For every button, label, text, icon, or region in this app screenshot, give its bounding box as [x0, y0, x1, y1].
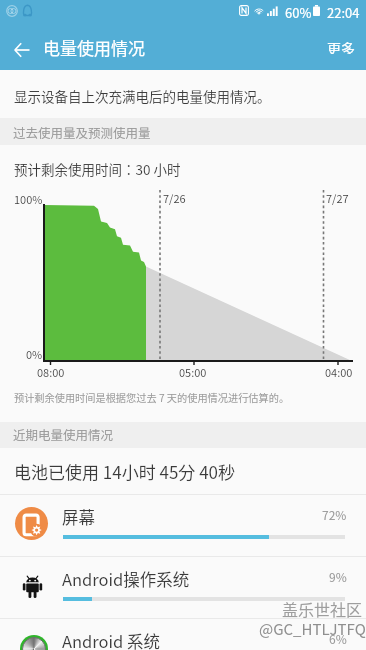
staticText: @GC_HTLJTFQ: [259, 618, 366, 640]
staticText: 电池已使用 14小时 45分 40秒: [14, 459, 236, 484]
staticText: 6%: [329, 630, 347, 647]
button[interactable]: Android操作系统: [0, 557, 366, 618]
staticText: 05:00: [179, 364, 207, 380]
staticText: 更多: [327, 38, 355, 54]
staticText: 电量使用情况: [43, 35, 145, 60]
staticText: 7/26: [163, 190, 186, 206]
staticText: 显示设备自上次充满电后的电量使用情况。: [14, 86, 271, 106]
staticText: 9%: [329, 568, 347, 585]
staticText: 7/27: [326, 190, 349, 206]
staticText: 盖乐世社区: [282, 597, 363, 620]
staticText: 22:04: [327, 3, 360, 22]
button[interactable]: Android 系统: [0, 619, 366, 650]
staticText: 60%: [285, 3, 312, 22]
button[interactable]: 返回: [5, 33, 39, 67]
staticText: 预计剩余使用时间是根据您过去 7 天的使用情况进行估算的。: [14, 390, 290, 405]
staticText: Android操作系统: [62, 567, 190, 591]
staticText: 04:00: [325, 364, 353, 380]
button[interactable]: 更多: [309, 24, 366, 68]
staticText: 100%: [14, 191, 43, 207]
staticText: 屏幕: [62, 505, 95, 529]
button[interactable]: 屏幕: [0, 495, 366, 556]
staticText: 0%: [26, 346, 43, 362]
staticText: 近期电量使用情况: [13, 425, 114, 443]
staticText: 过去使用量及预测使用量: [13, 123, 151, 141]
staticText: 72%: [322, 506, 347, 523]
staticText: 08:00: [37, 364, 65, 380]
staticText: Android 系统: [62, 629, 161, 650]
staticText: 预计剩余使用时间：30 小时: [14, 159, 181, 179]
